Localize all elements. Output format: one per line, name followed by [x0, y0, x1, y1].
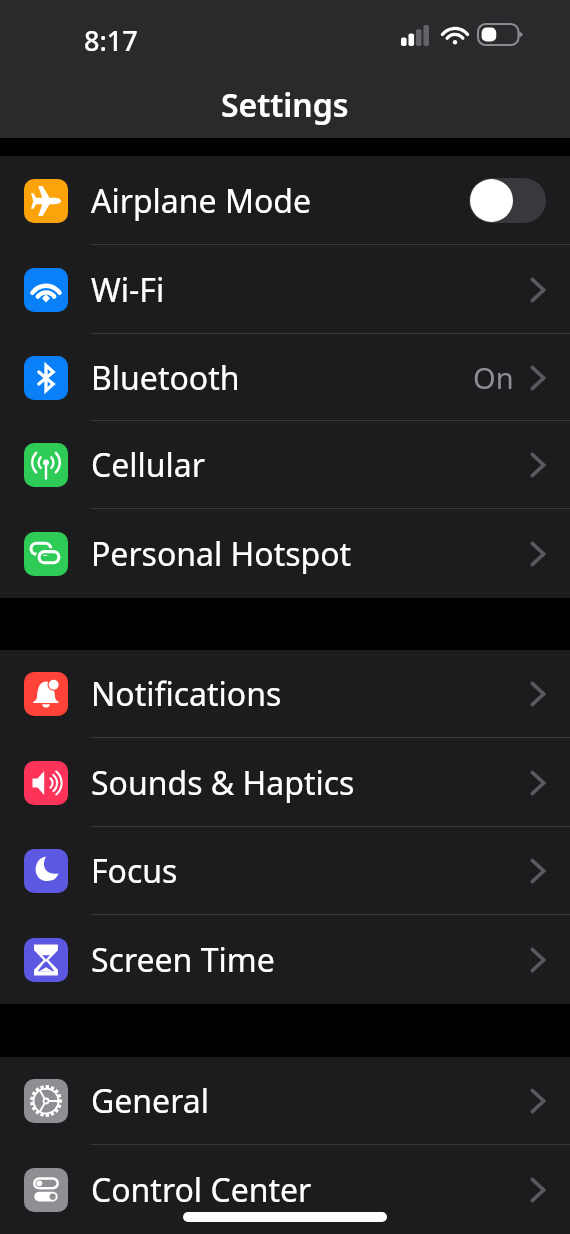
staticText: Personal Hotspot	[91, 532, 352, 576]
staticText: General	[91, 1079, 209, 1123]
staticText: On	[473, 358, 514, 397]
button[interactable]: Focus	[0, 827, 570, 915]
button[interactable]: Personal Hotspot	[0, 509, 570, 598]
staticText: Notifications	[91, 672, 282, 716]
button[interactable]: Notifications	[0, 650, 570, 738]
staticText: Wi-Fi	[91, 268, 165, 312]
staticText: Sounds & Haptics	[91, 761, 355, 805]
staticText: Bluetooth	[91, 356, 240, 400]
staticText: Screen Time	[91, 938, 275, 982]
staticText: Cellular	[91, 443, 205, 487]
button[interactable]: Bluetooth	[0, 334, 570, 421]
staticText: Control Center	[91, 1168, 312, 1212]
staticText: 8:17	[84, 22, 138, 59]
button[interactable]: Control Center	[0, 1145, 570, 1234]
button[interactable]: Wi-Fi	[0, 245, 570, 334]
staticText: Airplane Mode	[91, 179, 312, 223]
button[interactable]: Screen Time	[0, 915, 570, 1004]
staticText: Settings	[221, 83, 349, 127]
button[interactable]: General	[0, 1057, 570, 1145]
staticText: Focus	[91, 849, 178, 893]
button[interactable]: Cellular	[0, 421, 570, 509]
button[interactable]: Airplane Mode	[0, 156, 570, 245]
button[interactable]: Sounds & Haptics	[0, 738, 570, 827]
